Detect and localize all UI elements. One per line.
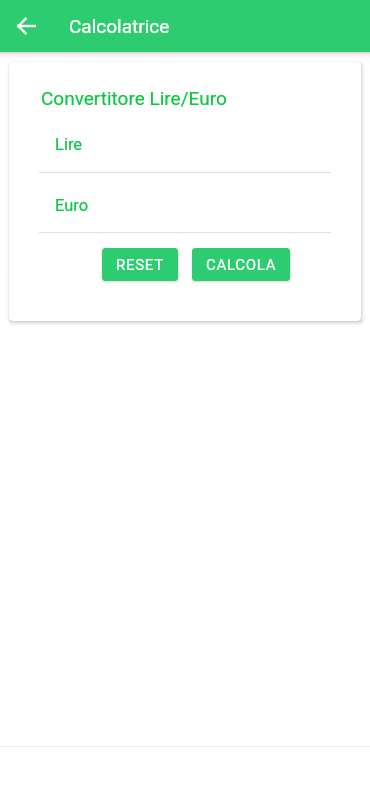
button[interactable]: CALCOLA bbox=[192, 248, 290, 281]
staticText: Convertitore Lire/Euro bbox=[41, 87, 227, 109]
button[interactable]: Lire bbox=[39, 124, 331, 173]
button[interactable]: RESET bbox=[102, 248, 178, 281]
staticText: Calcolatrice bbox=[69, 15, 170, 37]
staticText: RESET bbox=[116, 256, 164, 274]
button[interactable]: Back bbox=[10, 10, 42, 42]
staticText: Euro bbox=[55, 196, 89, 215]
staticText: CALCOLA bbox=[206, 256, 277, 274]
staticText: Lire bbox=[55, 135, 83, 154]
button[interactable]: Euro bbox=[39, 184, 331, 233]
